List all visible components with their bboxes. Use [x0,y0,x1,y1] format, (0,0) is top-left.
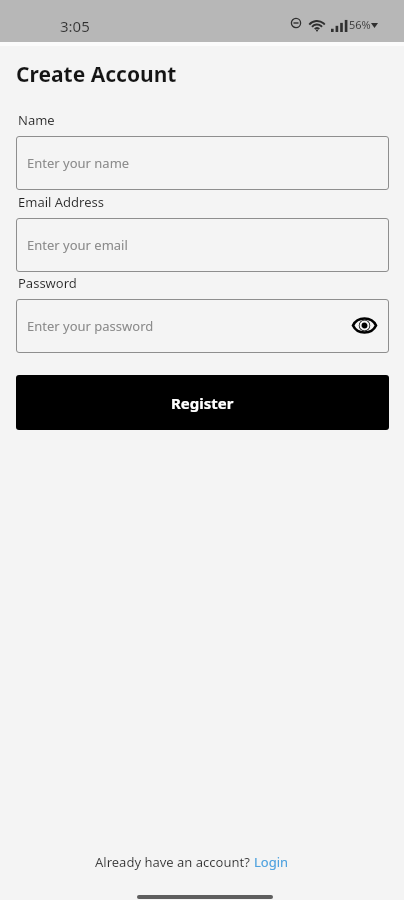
staticText: 3:05 [60,16,90,36]
button[interactable]: Show password [349,312,377,340]
staticText: Login [254,853,289,871]
staticText: Enter your password [27,317,154,335]
staticText: Email Address [18,193,104,211]
staticText: Name [18,111,55,129]
staticText: Register [171,393,234,413]
staticText: Create Account [16,60,177,89]
button[interactable]: Login [254,853,289,871]
button[interactable]: Enter your name [16,136,389,190]
staticText: Already have an account? [95,853,254,871]
staticText: Enter your email [27,236,128,254]
staticText: 56% [349,17,371,32]
button[interactable]: Register [16,375,389,430]
button[interactable]: Enter your password [16,299,389,353]
staticText: Password [18,274,77,292]
staticText: Enter your name [27,154,130,172]
button[interactable]: Enter your email [16,218,389,272]
